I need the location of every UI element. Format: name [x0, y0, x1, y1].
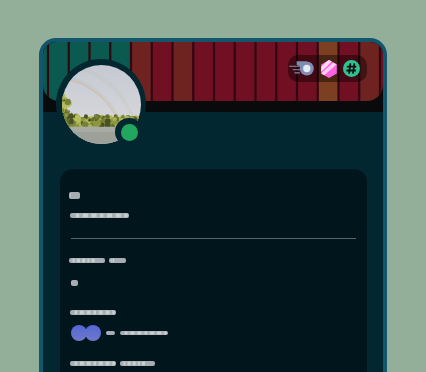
button[interactable]: Hashtag badge	[343, 60, 360, 77]
button[interactable]: Gem badge	[320, 60, 338, 78]
button[interactable]	[60, 169, 367, 372]
button[interactable]: Profile picture	[56, 59, 146, 149]
button[interactable]: Speed badge	[293, 57, 316, 80]
